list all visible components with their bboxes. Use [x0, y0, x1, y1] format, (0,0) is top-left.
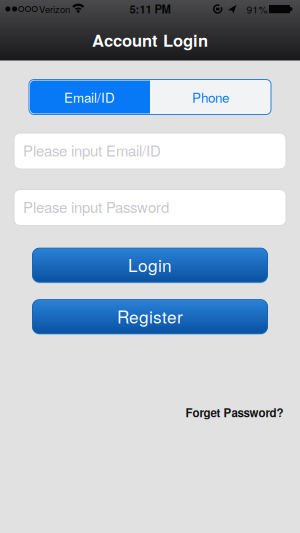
staticText: Email/ID — [64, 87, 115, 106]
button[interactable]: Email/ID — [29, 79, 150, 114]
button[interactable]: Register — [32, 299, 267, 334]
button[interactable]: Forget Password? — [185, 404, 283, 421]
staticText: Verizon — [39, 2, 70, 16]
staticText: Register — [117, 304, 183, 328]
staticText: Forget Password? — [185, 404, 283, 421]
button[interactable]: Please input Password — [14, 189, 286, 225]
staticText: Please input Email/ID — [23, 139, 161, 161]
staticText: Account Login — [92, 28, 208, 52]
staticText: 91% — [246, 2, 267, 16]
button[interactable]: Phone — [150, 79, 271, 114]
staticText: Phone — [192, 87, 229, 106]
button[interactable]: Please input Email/ID — [14, 133, 286, 169]
staticText: Please input Password — [23, 196, 169, 217]
staticText: 5:11 PM — [129, 1, 170, 17]
button[interactable]: Login — [32, 247, 267, 283]
staticText: Login — [128, 252, 172, 277]
